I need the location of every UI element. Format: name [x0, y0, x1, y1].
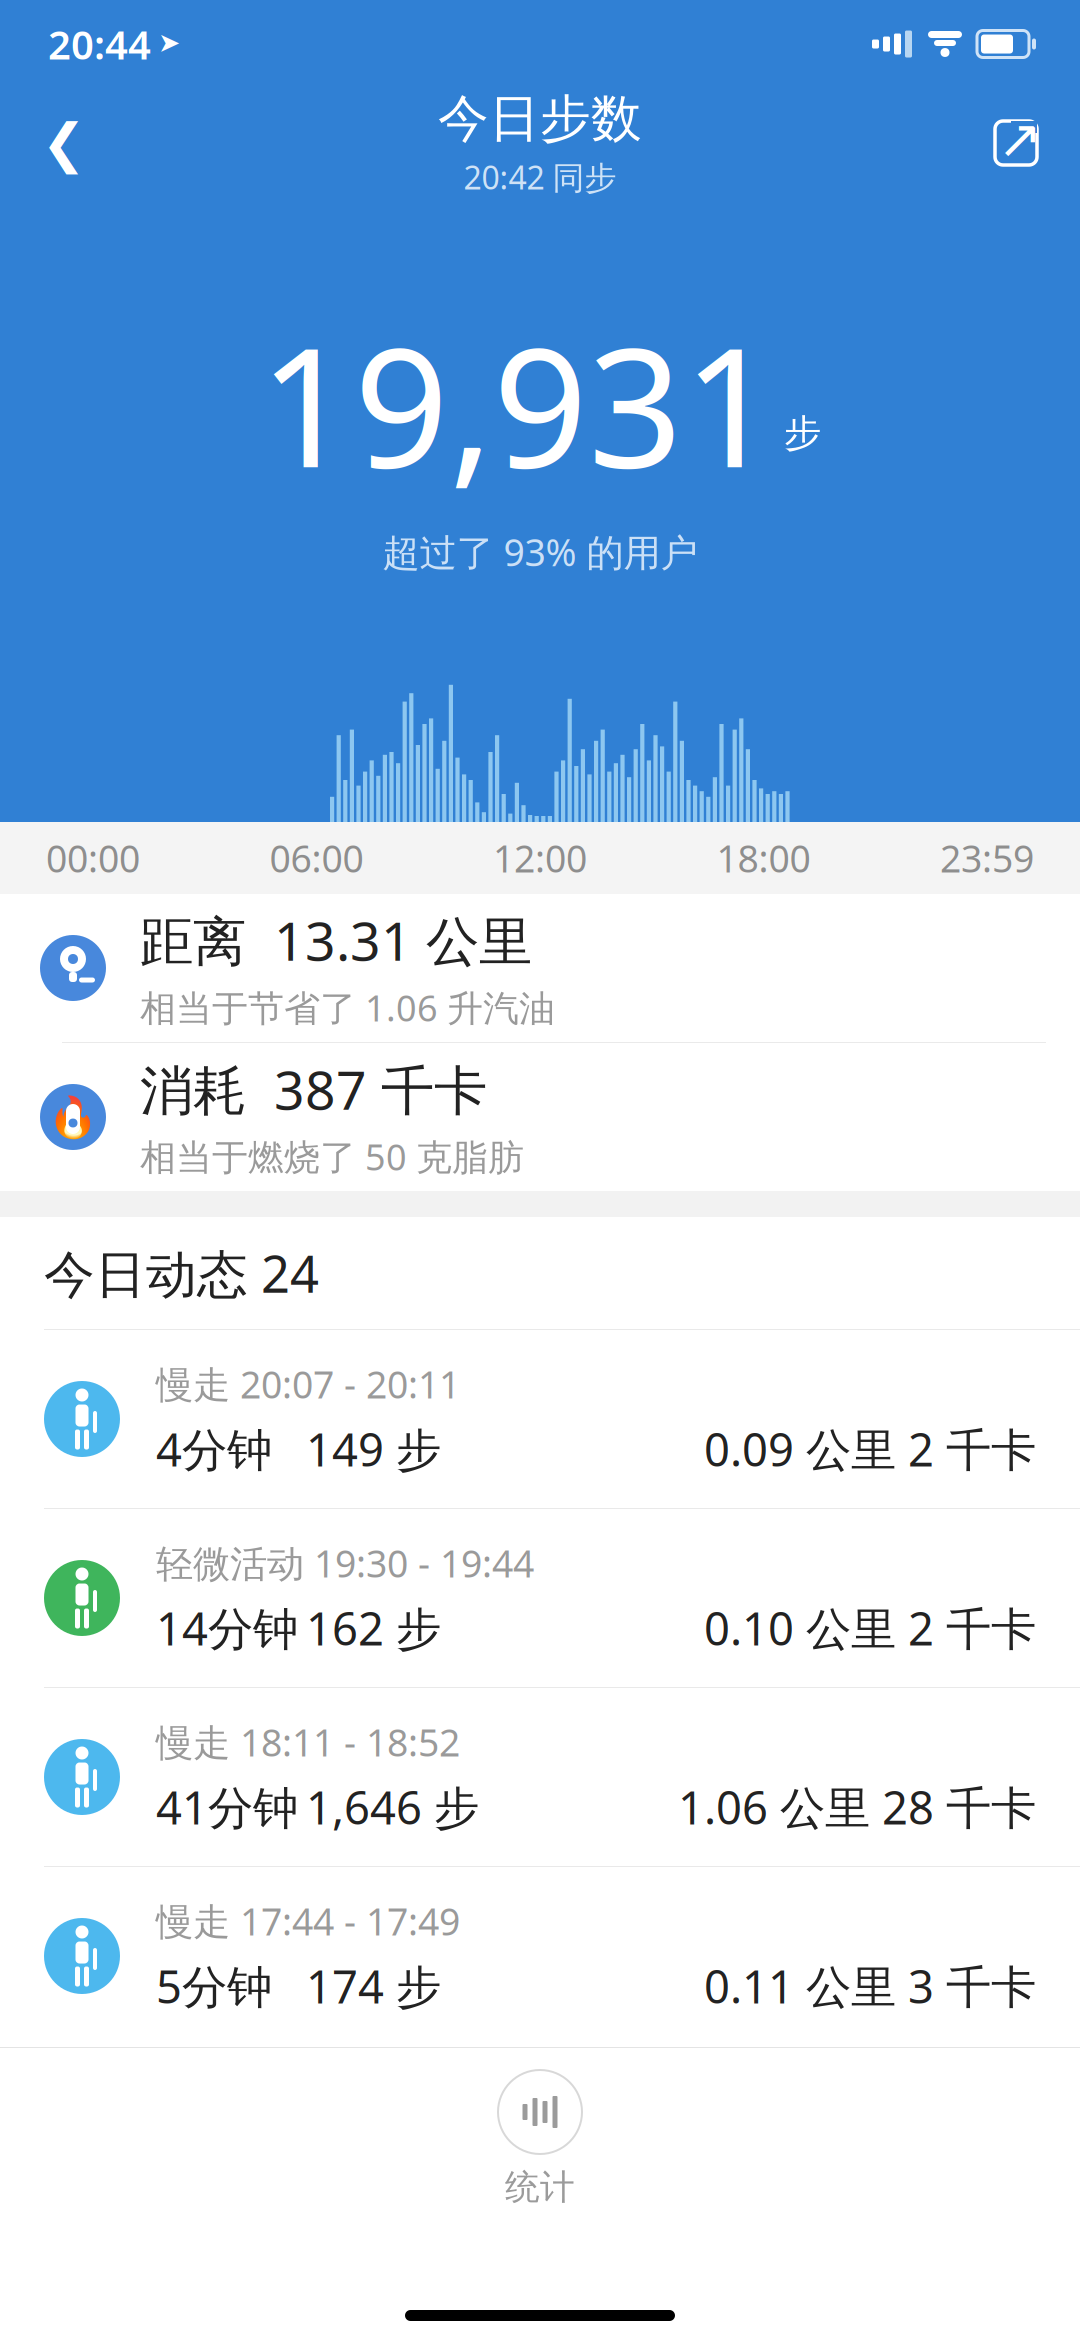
- staticText: 超过了 93% 的用户: [382, 527, 697, 577]
- staticText: 174 步: [306, 1956, 441, 2016]
- button[interactable]: 统计: [0, 2048, 1080, 2225]
- staticText: ❮: [41, 113, 86, 173]
- staticText: 20:44: [48, 17, 151, 70]
- staticText: 相当于燃烧了 50 克脂肪: [140, 1132, 524, 1180]
- staticText: 149 步: [306, 1419, 441, 1479]
- staticText: 5分钟: [156, 1956, 272, 2016]
- button[interactable]: 分享: [966, 93, 1066, 193]
- staticText: 41分钟: [156, 1777, 298, 1837]
- staticText: 步: [784, 410, 821, 456]
- staticText: 20:42 同步: [463, 156, 616, 198]
- staticText: 23:59: [940, 833, 1034, 883]
- button[interactable]: 🔥: [0, 1043, 1080, 1191]
- button[interactable]: 慢走 20:07 - 20:11: [0, 1330, 1080, 1509]
- button[interactable]: 慢走 18:11 - 18:52: [0, 1688, 1080, 1867]
- staticText: 1.06 公里 28 千卡: [678, 1777, 1036, 1837]
- button[interactable]: 轻微活动 19:30 - 19:44: [0, 1509, 1080, 1688]
- staticText: 1,646 步: [306, 1777, 479, 1837]
- staticText: 轻微活动 19:30 - 19:44: [156, 1538, 534, 1588]
- staticText: 0.11 公里 3 千卡: [704, 1956, 1036, 2016]
- staticText: 0.10 公里 2 千卡: [704, 1598, 1036, 1658]
- staticText: 距离 13.31 公里: [140, 905, 532, 975]
- staticText: 🔥: [48, 1094, 98, 1140]
- staticText: 18:00: [716, 833, 810, 883]
- staticText: 今日动态 24: [44, 1239, 319, 1307]
- staticText: 162 步: [306, 1598, 441, 1658]
- staticText: 慢走 17:44 - 17:49: [156, 1896, 460, 1946]
- staticText: 14分钟: [156, 1598, 298, 1658]
- staticText: 12:00: [493, 833, 587, 883]
- staticText: 19,931: [259, 293, 778, 513]
- staticText: 慢走 20:07 - 20:11: [156, 1359, 460, 1409]
- staticText: 慢走 18:11 - 18:52: [156, 1717, 460, 1767]
- button[interactable]: 慢走 17:44 - 17:49: [0, 1867, 1080, 2045]
- button[interactable]: 返回: [14, 93, 114, 193]
- staticText: 统计: [505, 2166, 575, 2209]
- staticText: 0.09 公里 2 千卡: [704, 1419, 1036, 1479]
- button[interactable]: 距离 13.31 公里: [0, 894, 1080, 1042]
- staticText: 今日步数: [438, 88, 642, 150]
- staticText: 消耗 387 千卡: [140, 1054, 487, 1124]
- staticText: ↗: [997, 109, 1042, 169]
- staticText: 4分钟: [156, 1419, 272, 1479]
- staticText: 00:00: [46, 833, 140, 883]
- staticText: ➤: [158, 27, 180, 58]
- staticText: 相当于节省了 1.06 升汽油: [140, 983, 555, 1031]
- staticText: 06:00: [269, 833, 363, 883]
